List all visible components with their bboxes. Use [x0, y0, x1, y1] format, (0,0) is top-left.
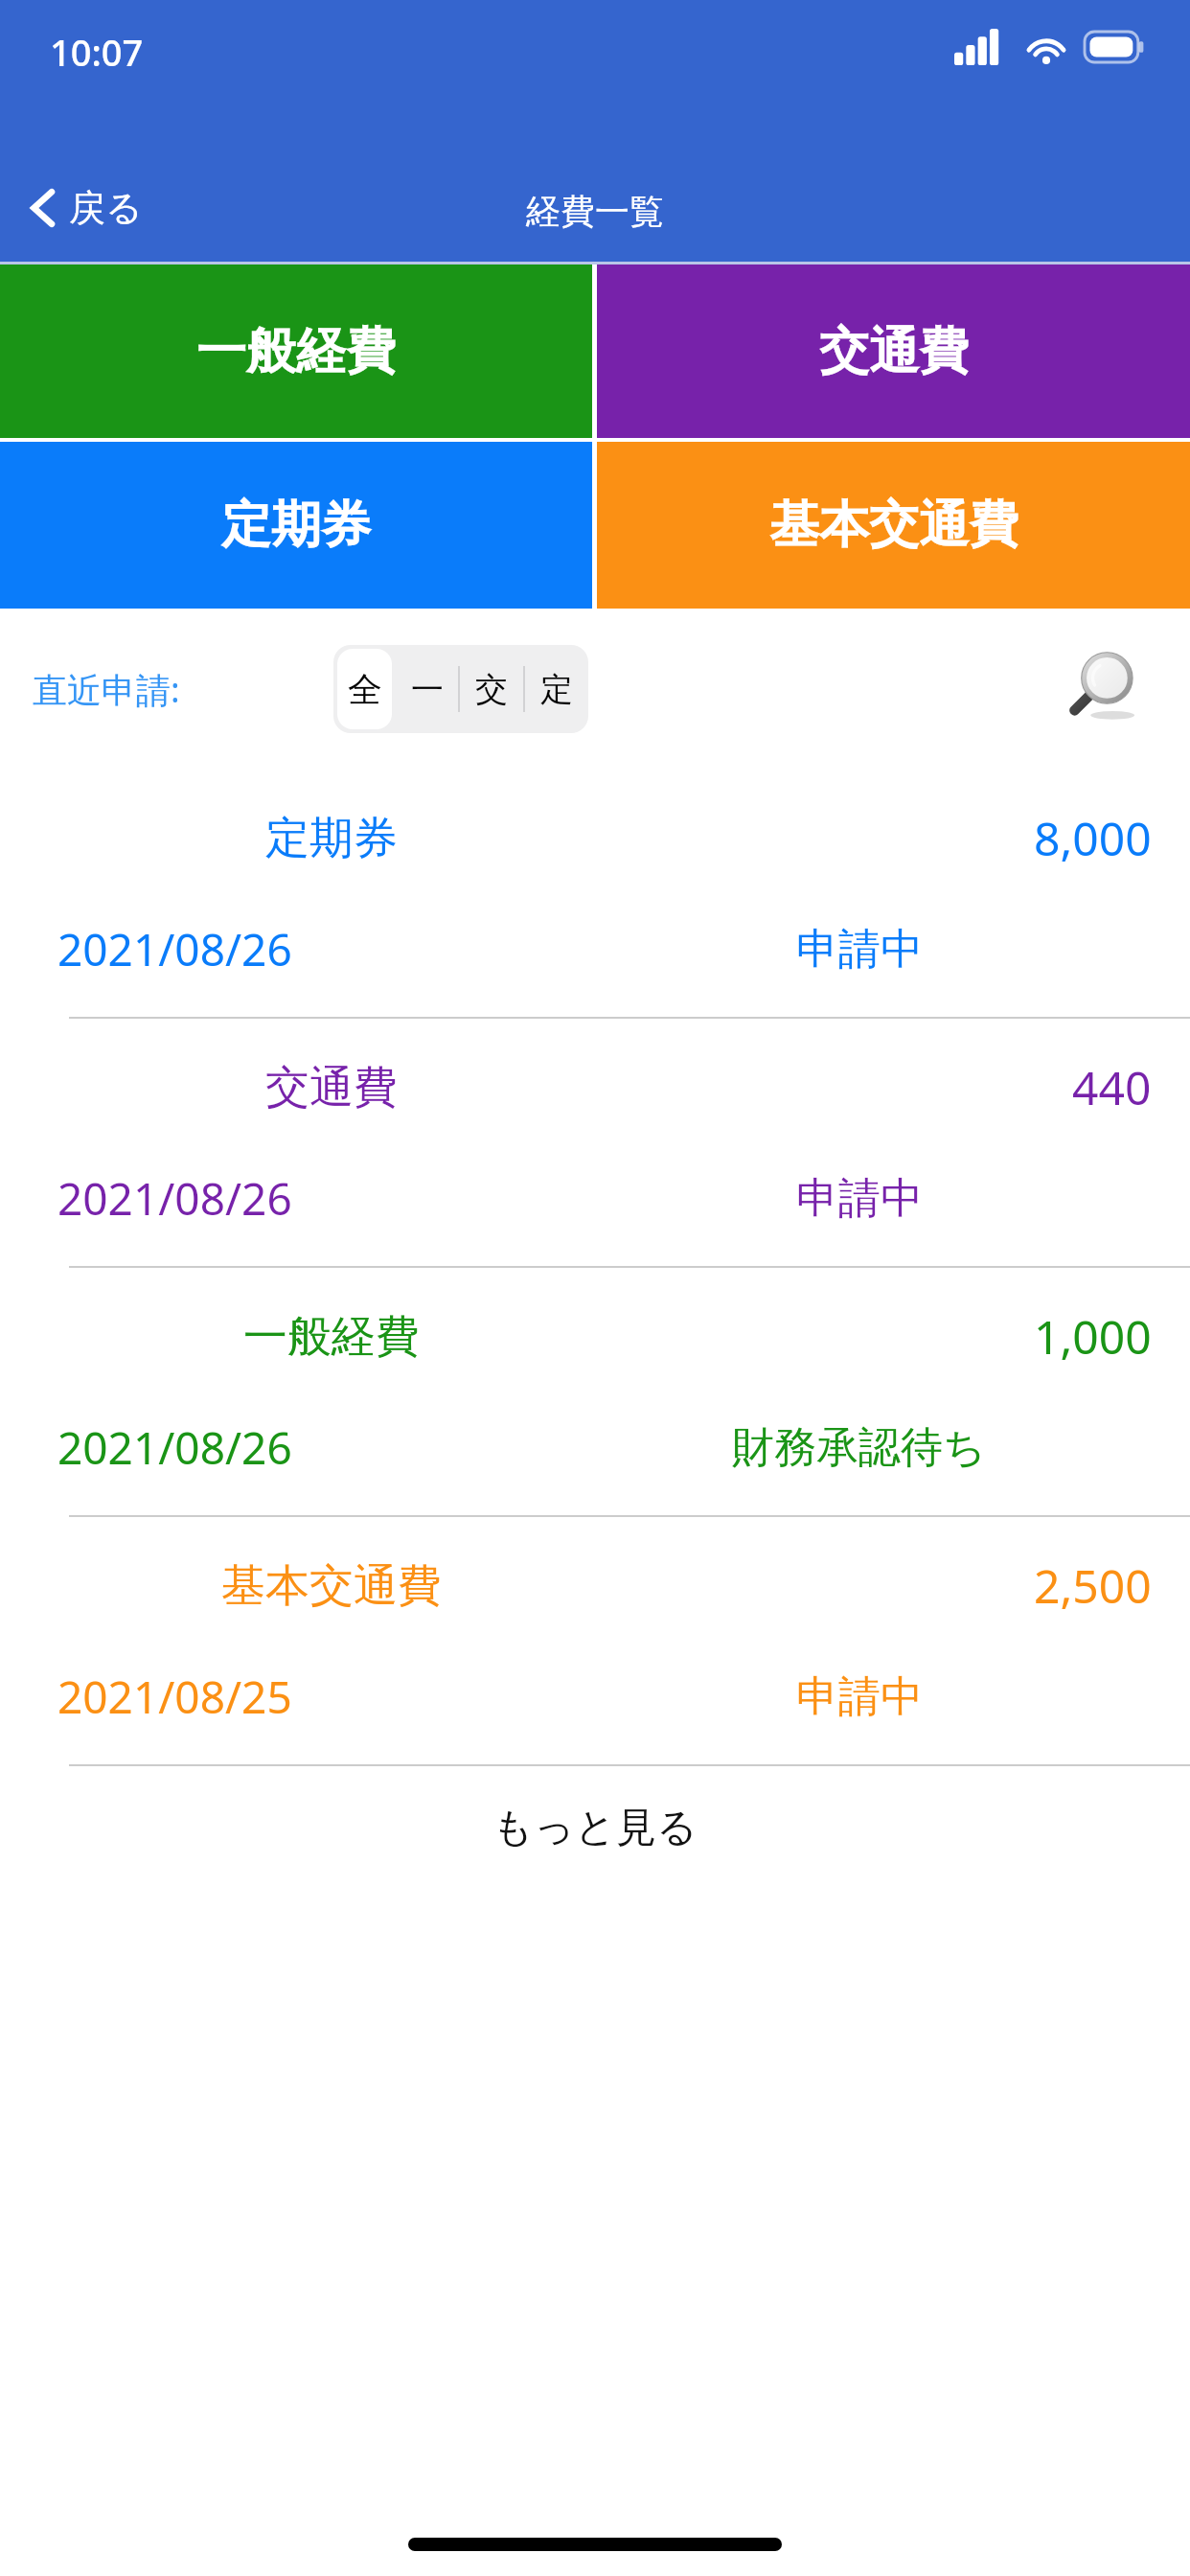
staticText: 定期券 — [221, 494, 371, 557]
staticText: 2021/08/25 — [57, 1667, 292, 1727]
staticText: 交通費 — [819, 320, 969, 383]
button[interactable]: 定期券 — [0, 442, 592, 609]
button[interactable]: 交通費 — [0, 1019, 1190, 1266]
staticText: 交 — [475, 669, 508, 710]
staticText: 8,000 — [1034, 807, 1152, 869]
button[interactable]: 全 — [337, 649, 392, 729]
button[interactable]: 一般経費 — [0, 1268, 1190, 1515]
staticText: 定 — [540, 669, 573, 710]
staticText: 基本交通費 — [221, 1558, 442, 1614]
button[interactable]: 交 — [460, 645, 523, 733]
staticText: 1,000 — [1034, 1305, 1152, 1368]
staticText: 2021/08/26 — [57, 1417, 292, 1478]
button[interactable]: 一 — [396, 645, 458, 733]
button[interactable]: Search — [1064, 636, 1169, 742]
staticText: 10:07 — [50, 27, 144, 77]
button[interactable]: 基本交通費 — [0, 1517, 1190, 1764]
staticText: 一般経費 — [243, 1309, 420, 1365]
button[interactable]: 定期券 — [0, 770, 1190, 1017]
button[interactable]: 交通費 — [597, 264, 1190, 438]
staticText: 2021/08/26 — [57, 919, 292, 979]
button[interactable]: 定 — [525, 645, 588, 733]
staticText: 経費一覧 — [526, 190, 664, 233]
staticText: もっと見る — [492, 1803, 698, 1853]
staticText: 基本交通費 — [769, 494, 1018, 557]
staticText: 申請中 — [796, 1172, 923, 1225]
staticText: 定期券 — [265, 811, 398, 866]
staticText: 2,500 — [1034, 1554, 1152, 1617]
staticText: 一 — [411, 669, 444, 710]
staticText: 直近申請: — [33, 666, 180, 713]
staticText: 2021/08/26 — [57, 1168, 292, 1229]
staticText: 交通費 — [265, 1060, 398, 1115]
button[interactable]: 基本交通費 — [597, 442, 1190, 609]
staticText: 一般経費 — [196, 320, 396, 383]
staticText: 戻る — [69, 185, 143, 231]
button[interactable]: 戻る — [23, 179, 149, 237]
staticText: 財務承認待ち — [732, 1421, 987, 1474]
staticText: 申請中 — [796, 1670, 923, 1723]
button[interactable]: もっと見る — [0, 1766, 1190, 1889]
button[interactable]: 一般経費 — [0, 264, 592, 438]
staticText: 440 — [1072, 1056, 1152, 1118]
staticText: 申請中 — [796, 923, 923, 976]
staticText: 全 — [348, 668, 382, 711]
